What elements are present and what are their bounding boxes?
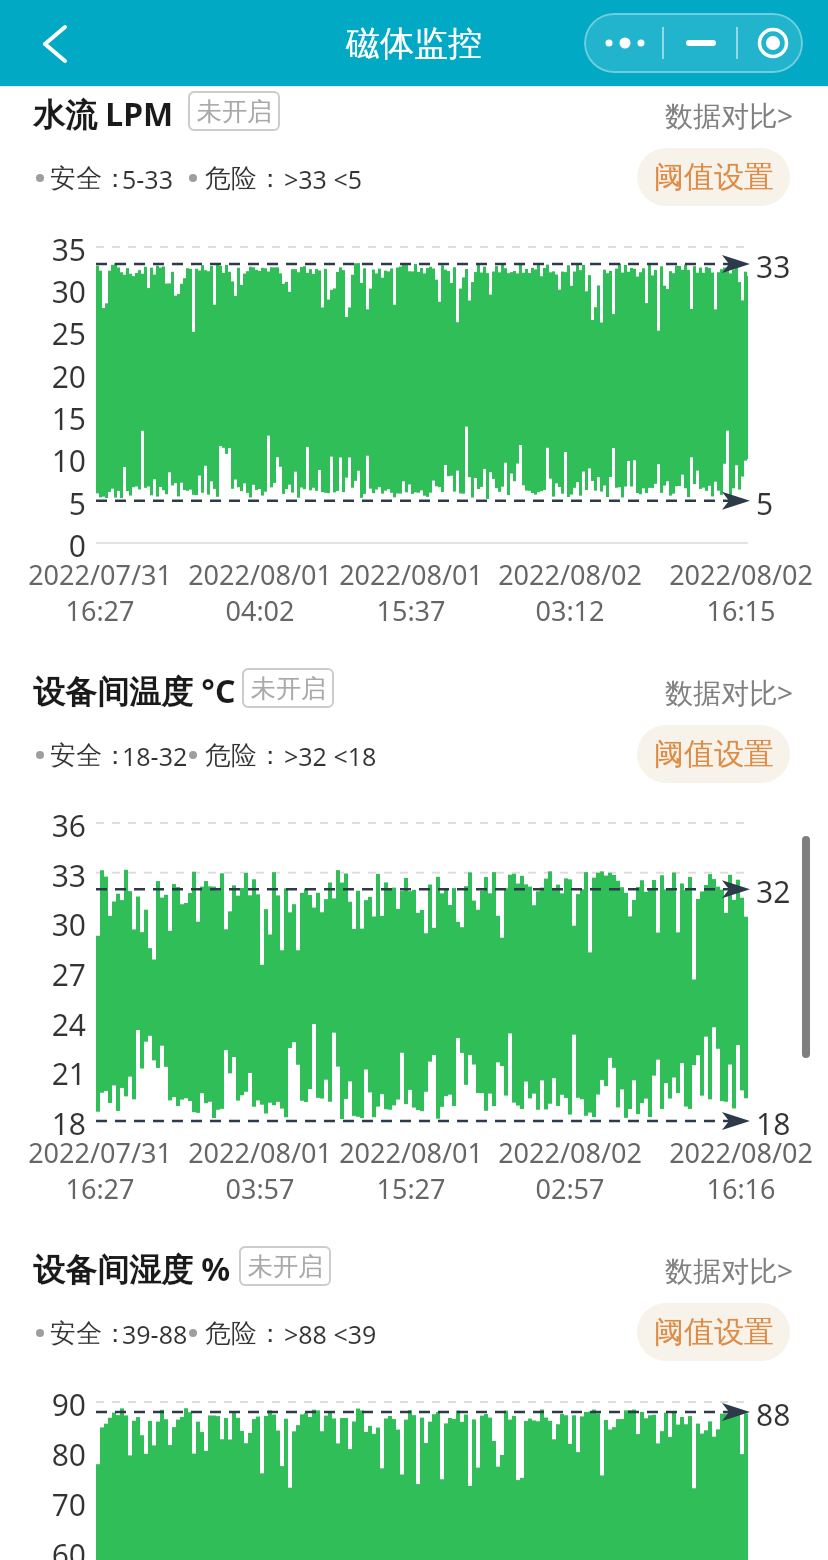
staticText: 33: [756, 246, 791, 287]
staticText: 2022/08/01 15:37: [326, 556, 496, 629]
staticText: 2022/08/02 03:12: [485, 556, 655, 629]
staticText: 18: [16, 1103, 86, 1144]
button[interactable]: [584, 13, 803, 73]
staticText: 27: [16, 954, 86, 995]
staticText: 安全：: [50, 739, 128, 772]
staticText: 24: [16, 1004, 86, 1045]
staticText: 未开启: [251, 673, 326, 704]
button[interactable]: 数据对比>: [593, 1251, 793, 1289]
staticText: 危险：: [205, 739, 283, 772]
staticText: 阈值设置: [654, 158, 774, 196]
staticText: 2022/08/02 16:15: [656, 556, 826, 629]
staticText: 未开启: [197, 96, 272, 127]
button[interactable]: [30, 17, 82, 69]
staticText: 21: [16, 1053, 86, 1094]
button[interactable]: 阈值设置: [637, 1303, 790, 1361]
staticText: 36: [16, 805, 86, 846]
staticText: 18: [756, 1103, 791, 1144]
staticText: 33: [16, 855, 86, 896]
staticText: 90: [16, 1384, 86, 1425]
staticText: 2022/08/01 15:27: [326, 1134, 496, 1207]
staticText: 35: [16, 229, 86, 270]
staticText: 阈值设置: [654, 735, 774, 773]
staticText: 2022/07/31 16:27: [15, 556, 185, 629]
staticText: 2022/08/01 03:57: [175, 1134, 345, 1207]
button[interactable]: 阈值设置: [637, 148, 790, 206]
button[interactable]: 阈值设置: [637, 725, 790, 783]
staticText: 安全：: [50, 1317, 128, 1350]
staticText: 10: [16, 440, 86, 481]
staticText: 70: [16, 1484, 86, 1525]
staticText: 2022/08/02 02:57: [485, 1134, 655, 1207]
button[interactable]: 数据对比>: [593, 673, 793, 711]
button[interactable]: 数据对比>: [593, 96, 793, 134]
staticText: 水流 LPM: [33, 92, 174, 136]
button[interactable]: 未开启: [239, 1246, 331, 1286]
staticText: 2022/08/02 16:16: [656, 1134, 826, 1207]
staticText: 18-32: [122, 739, 188, 773]
staticText: 设备间湿度 %: [33, 1247, 231, 1291]
staticText: 80: [16, 1434, 86, 1475]
staticText: 15: [16, 398, 86, 439]
button[interactable]: 未开启: [242, 668, 334, 708]
staticText: 5: [756, 483, 774, 524]
staticText: 2022/08/01 04:02: [175, 556, 345, 629]
staticText: 39-88: [122, 1317, 188, 1351]
staticText: >32 <18: [284, 739, 377, 773]
staticText: 2022/07/31 16:27: [15, 1134, 185, 1207]
staticText: 危险：: [205, 162, 283, 195]
staticText: 未开启: [248, 1251, 323, 1282]
staticText: 60: [16, 1534, 86, 1560]
staticText: 5: [16, 483, 86, 524]
staticText: 30: [16, 904, 86, 945]
staticText: 磁体监控: [346, 22, 482, 65]
staticText: 安全：: [50, 162, 128, 195]
staticText: 5-33: [122, 162, 173, 196]
staticText: 危险：: [205, 1317, 283, 1350]
staticText: >88 <39: [284, 1317, 377, 1351]
button[interactable]: 未开启: [188, 91, 280, 131]
staticText: 25: [16, 313, 86, 354]
staticText: 32: [756, 871, 791, 912]
staticText: 88: [756, 1394, 791, 1435]
staticText: >33 <5: [284, 162, 363, 196]
staticText: 设备间温度 °C: [33, 669, 236, 713]
staticText: 20: [16, 356, 86, 397]
staticText: 0: [16, 525, 86, 566]
staticText: 阈值设置: [654, 1313, 774, 1351]
staticText: 30: [16, 271, 86, 312]
